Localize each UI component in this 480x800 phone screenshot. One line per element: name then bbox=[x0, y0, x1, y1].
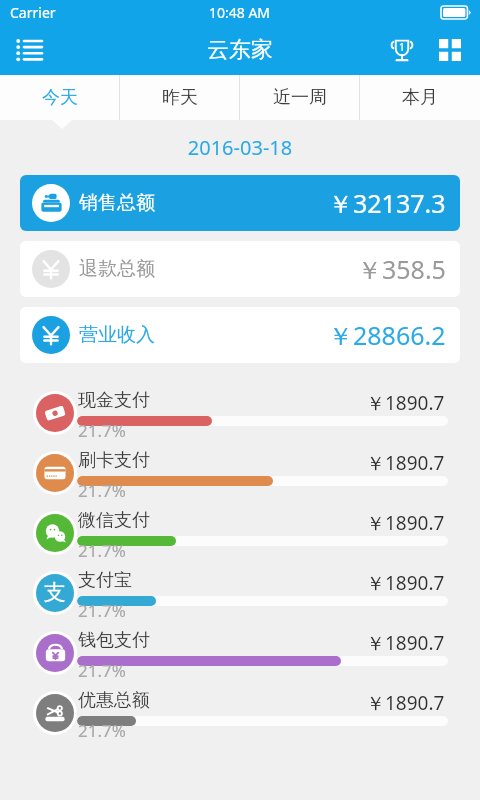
staticText: ￥1890.7 bbox=[366, 510, 445, 536]
staticText: ￥1890.7 bbox=[366, 390, 445, 416]
button[interactable]: Menu bbox=[6, 27, 52, 73]
staticText: ￥32137.3 bbox=[328, 186, 446, 220]
staticText: 本月 bbox=[402, 86, 438, 109]
button[interactable]: Achievements bbox=[378, 26, 426, 74]
staticText: 钱包支付 bbox=[78, 629, 150, 652]
button[interactable]: 本月 bbox=[360, 75, 480, 120]
staticText: ￥1890.7 bbox=[366, 630, 445, 656]
staticText: 今天 bbox=[42, 86, 78, 109]
staticText: 支付宝 bbox=[78, 569, 132, 592]
button[interactable]: Grid view bbox=[426, 26, 474, 74]
button[interactable]: 近一周 bbox=[240, 75, 360, 120]
staticText: 21.7% bbox=[78, 659, 126, 682]
staticText: 支 bbox=[44, 579, 66, 607]
staticText: 昨天 bbox=[162, 86, 198, 109]
button[interactable]: 现金支付 bbox=[0, 383, 480, 443]
button[interactable]: 退款总额 bbox=[20, 241, 460, 297]
button[interactable]: 微信支付 bbox=[0, 503, 480, 563]
button[interactable]: 钱包支付 bbox=[0, 623, 480, 683]
staticText: 1 bbox=[399, 40, 405, 54]
staticText: ￥1890.7 bbox=[366, 690, 445, 716]
staticText: 刷卡支付 bbox=[78, 449, 150, 472]
staticText: 微信支付 bbox=[78, 509, 150, 532]
button[interactable]: 营业收入 bbox=[20, 307, 460, 363]
staticText: 现金支付 bbox=[78, 389, 150, 412]
staticText: 21.7% bbox=[78, 719, 126, 742]
button[interactable]: 销售总额 bbox=[20, 175, 460, 231]
staticText: Carrier bbox=[10, 3, 56, 22]
button[interactable]: 刷卡支付 bbox=[0, 443, 480, 503]
staticText: ￥358.5 bbox=[357, 252, 446, 286]
staticText: 云东家 bbox=[207, 36, 273, 64]
staticText: ￥1890.7 bbox=[366, 450, 445, 476]
button[interactable]: 今天 bbox=[0, 75, 120, 120]
button[interactable]: 昨天 bbox=[120, 75, 240, 120]
staticText: 10:48 AM bbox=[209, 3, 271, 22]
staticText: 21.7% bbox=[78, 539, 126, 562]
staticText: 2016-03-18 bbox=[0, 134, 480, 161]
staticText: 近一周 bbox=[273, 86, 327, 109]
staticText: 优惠总额 bbox=[78, 689, 150, 712]
staticText: 21.7% bbox=[78, 419, 126, 442]
button[interactable]: 优惠总额 bbox=[0, 683, 480, 743]
staticText: 退款总额 bbox=[79, 257, 155, 281]
button[interactable]: 支 bbox=[0, 563, 480, 623]
staticText: 21.7% bbox=[78, 479, 126, 502]
staticText: 21.7% bbox=[78, 599, 126, 622]
staticText: 营业收入 bbox=[79, 323, 155, 347]
staticText: ￥28866.2 bbox=[328, 318, 446, 352]
staticText: 销售总额 bbox=[79, 191, 155, 215]
staticText: ￥1890.7 bbox=[366, 570, 445, 596]
